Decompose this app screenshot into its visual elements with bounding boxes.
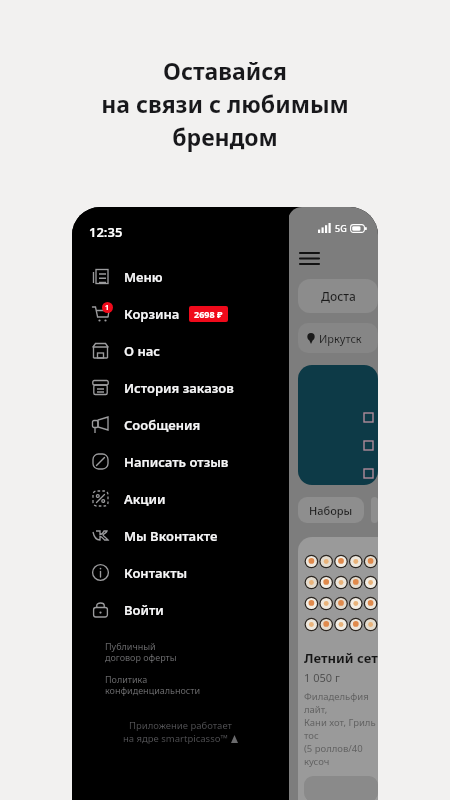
button[interactable]: Меню xyxy=(72,258,289,295)
button[interactable]: Сообщения xyxy=(72,406,289,443)
staticText: Филадельфия лайт, Кани хот, Гриль тос (5… xyxy=(304,690,378,768)
staticText: 5G xyxy=(335,222,347,234)
button[interactable]: Войти xyxy=(72,591,289,628)
staticText: Корзина xyxy=(124,305,180,323)
staticText: Меню xyxy=(124,268,163,286)
staticText: Мы Вконтакте xyxy=(124,527,218,545)
staticText: 1 050 г xyxy=(304,670,340,685)
staticText: на ядре smartpicasso™ xyxy=(123,732,228,745)
staticText: Доста xyxy=(321,288,356,304)
staticText: О нас xyxy=(124,342,160,360)
staticText: 1 xyxy=(105,303,110,313)
staticText: Войти xyxy=(124,601,164,619)
button[interactable]: О нас xyxy=(72,332,289,369)
button[interactable]: Акции xyxy=(72,480,289,517)
button[interactable]: История заказов xyxy=(72,369,289,406)
staticText: 12:35 xyxy=(89,223,123,241)
button[interactable]: Иркутск xyxy=(298,323,378,353)
button[interactable]: Политика конфиденциальности xyxy=(105,673,201,697)
staticText: Написать отзыв xyxy=(124,453,229,471)
button[interactable]: Публичный договор оферты xyxy=(105,640,177,664)
button[interactable]: 1 xyxy=(72,295,289,332)
button[interactable]: Р xyxy=(371,497,378,523)
staticText: Оставайся на связи с любимым брендом xyxy=(101,55,349,153)
staticText: Наборы xyxy=(309,503,353,518)
staticText: Контакты xyxy=(124,564,188,582)
button[interactable]: Доста xyxy=(298,279,378,313)
staticText: 2698 ₽ xyxy=(194,308,223,320)
staticText: История заказов xyxy=(124,379,234,397)
button[interactable]: Мы Вконтакте xyxy=(72,517,289,554)
button[interactable]: Написать отзыв xyxy=(72,443,289,480)
staticText: Летний сет xyxy=(304,649,378,667)
button[interactable]: Наборы xyxy=(298,497,364,523)
button[interactable]: Контакты xyxy=(72,554,289,591)
button[interactable] xyxy=(298,365,378,485)
staticText: Акции xyxy=(124,490,166,508)
staticText: Сообщения xyxy=(124,416,201,434)
staticText: Приложение работает xyxy=(129,719,232,732)
button[interactable]: Menu xyxy=(300,252,319,265)
button[interactable]: Летний сет xyxy=(298,537,378,800)
staticText: Иркутск xyxy=(319,331,362,346)
